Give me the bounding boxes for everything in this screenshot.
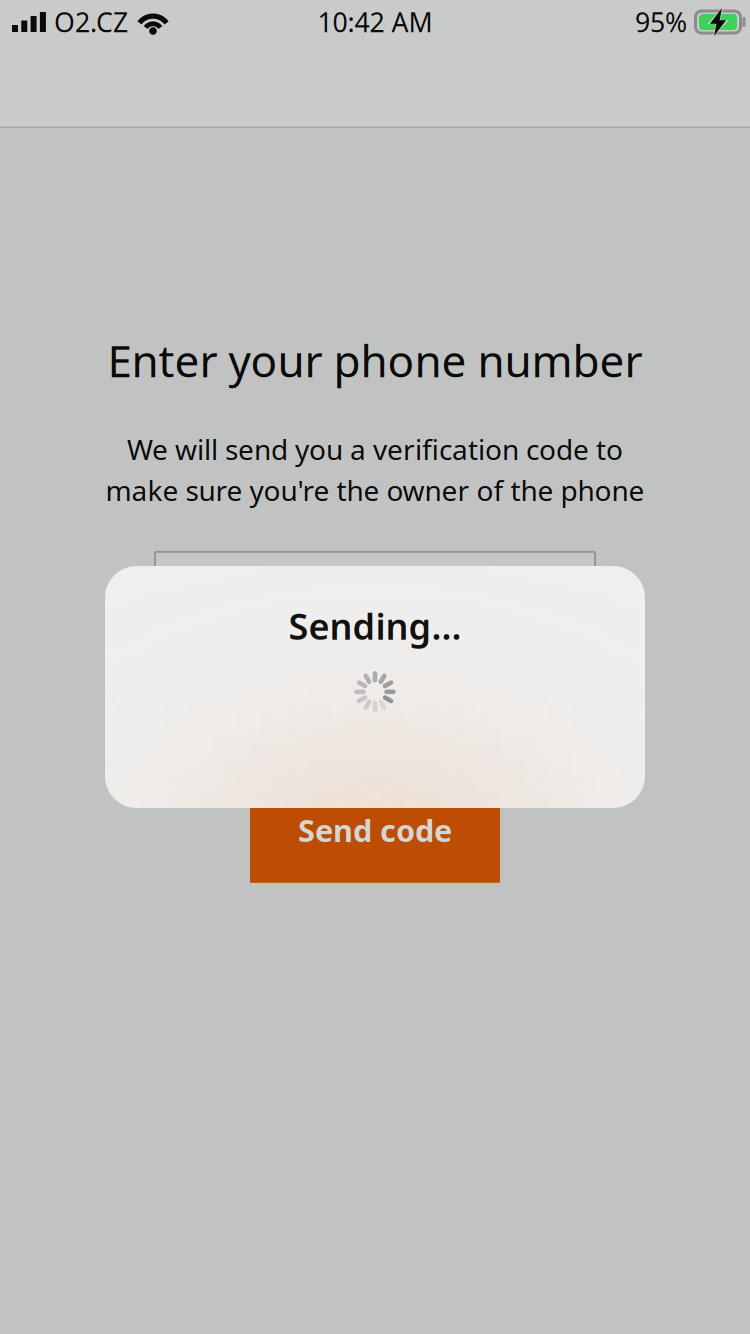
button[interactable]: Phone number [155,552,595,634]
staticText: O2.CZ [54,4,128,40]
staticText: We will send you a verification code to [127,430,623,468]
staticText: Enter your phone number [107,331,642,389]
button[interactable]: Send code [250,808,500,883]
staticText: 95% [635,4,687,40]
staticText: Send code [298,810,452,850]
staticText: Sending... [288,602,461,650]
staticText: 10:42 AM [317,4,432,40]
staticText: make sure you're the owner of the phone [105,472,644,509]
